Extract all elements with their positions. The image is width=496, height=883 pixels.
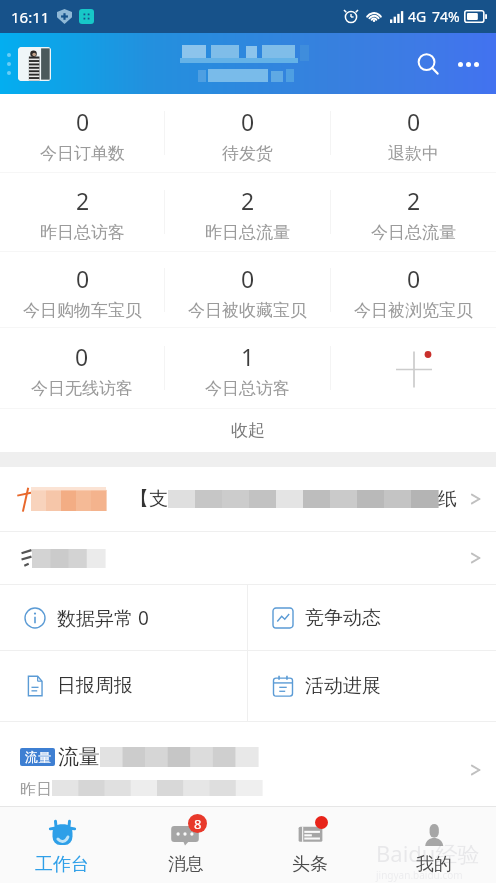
staticText: 昨日总流量 bbox=[205, 222, 290, 243]
staticText: 我的 bbox=[416, 853, 452, 876]
button[interactable]: 0 bbox=[0, 94, 164, 172]
button[interactable]: 1 bbox=[165, 328, 330, 408]
button[interactable]: 0 bbox=[165, 94, 330, 172]
staticText: 昨日总访客 bbox=[40, 222, 125, 243]
staticText: 竞争动态 bbox=[305, 606, 381, 630]
staticText: 流量 bbox=[58, 744, 100, 770]
staticText: 头条 bbox=[292, 853, 328, 876]
button[interactable]: 2 bbox=[0, 173, 164, 251]
staticText: 0 bbox=[76, 263, 90, 294]
button[interactable]: 竞争动态 bbox=[248, 585, 496, 650]
button[interactable]: 2 bbox=[331, 173, 496, 251]
staticText: 1 bbox=[241, 341, 255, 372]
button[interactable]: 活动进展 bbox=[248, 651, 496, 721]
staticText: jingyan.baidu.com bbox=[376, 868, 463, 882]
button[interactable]: 收起 bbox=[0, 409, 496, 452]
staticText: 今日总流量 bbox=[371, 222, 456, 243]
staticText: 今日被收藏宝贝 bbox=[188, 300, 307, 321]
staticText: 日报周报 bbox=[57, 674, 133, 698]
staticText: 消息 bbox=[168, 853, 204, 876]
button[interactable]: 0 bbox=[0, 328, 164, 408]
staticText: 4G bbox=[408, 7, 427, 26]
button[interactable]: 8 bbox=[124, 806, 248, 883]
button[interactable]: 日报周报 bbox=[0, 651, 247, 721]
button[interactable] bbox=[0, 532, 496, 584]
button[interactable]: 我的 bbox=[372, 806, 496, 883]
button[interactable]: Add bbox=[331, 328, 496, 408]
button[interactable]: 0 bbox=[331, 252, 496, 327]
staticText: 活动进展 bbox=[305, 674, 381, 698]
button[interactable]: More options bbox=[448, 44, 488, 84]
staticText: 0 bbox=[241, 106, 255, 137]
button[interactable]: 头条 bbox=[248, 806, 372, 883]
staticText: 今日购物车宝贝 bbox=[23, 300, 142, 321]
button[interactable]: 0 bbox=[331, 94, 496, 172]
staticText: 今日总访客 bbox=[205, 378, 290, 399]
staticText: 纸 bbox=[438, 487, 457, 511]
button[interactable]: 0 bbox=[0, 252, 164, 327]
staticText: 待发货 bbox=[222, 143, 273, 164]
button[interactable]: Add bbox=[394, 348, 434, 388]
staticText: 【支 bbox=[130, 487, 168, 511]
button[interactable]: Shop avatar bbox=[18, 47, 51, 81]
staticText: 0 bbox=[241, 263, 255, 294]
staticText: 16:11 bbox=[11, 7, 50, 27]
button[interactable]: 【支 bbox=[0, 467, 496, 531]
staticText: 2 bbox=[241, 185, 255, 216]
staticText: 收起 bbox=[231, 420, 265, 441]
staticText: 74% bbox=[432, 7, 460, 26]
staticText: 0 bbox=[76, 106, 90, 137]
staticText: 2 bbox=[76, 185, 90, 216]
staticText: 昨日 bbox=[20, 780, 52, 796]
button[interactable]: Search bbox=[408, 44, 448, 84]
button[interactable]: 流量 bbox=[0, 722, 496, 806]
staticText: 工作台 bbox=[35, 853, 89, 876]
button[interactable]: 工作台 bbox=[0, 806, 124, 883]
staticText: 今日无线访客 bbox=[31, 378, 133, 399]
staticText: 0 bbox=[407, 106, 421, 137]
staticText: 8 bbox=[194, 815, 202, 833]
staticText: 今日被浏览宝贝 bbox=[354, 300, 473, 321]
staticText: 退款中 bbox=[388, 143, 439, 164]
staticText: 2 bbox=[407, 185, 421, 216]
staticText: 流量 bbox=[25, 749, 51, 765]
staticText: 数据异常 0 bbox=[57, 605, 149, 631]
button[interactable]: 2 bbox=[165, 173, 330, 251]
button[interactable]: 0 bbox=[165, 252, 330, 327]
button[interactable]: 数据异常 0 bbox=[0, 585, 247, 650]
staticText: 0 bbox=[407, 263, 421, 294]
staticText: 今日订单数 bbox=[40, 143, 125, 164]
staticText: 0 bbox=[75, 341, 89, 372]
staticText: Baidu经验 bbox=[376, 838, 480, 868]
